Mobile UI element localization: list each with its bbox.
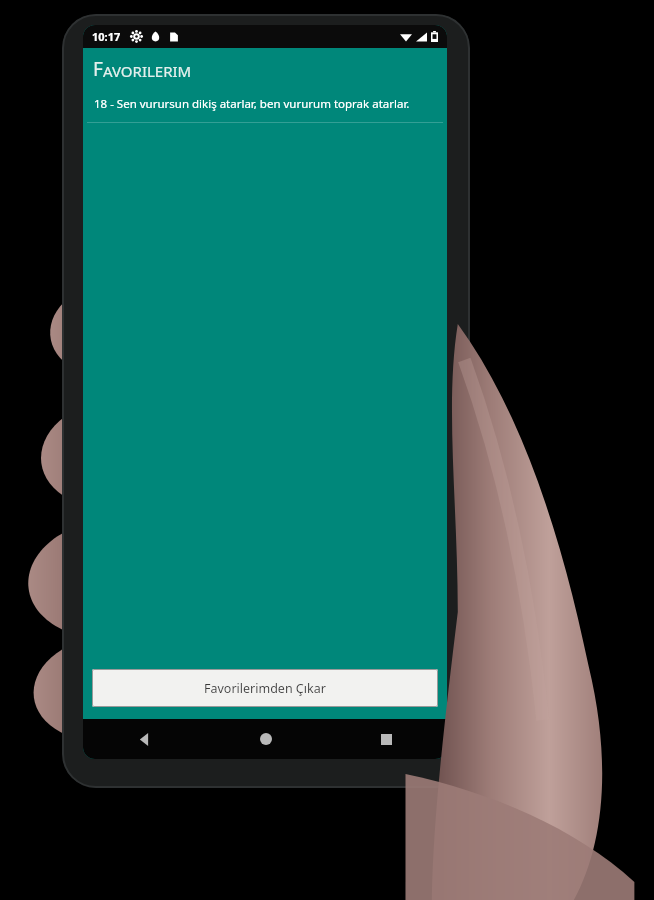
staticText: F	[93, 56, 103, 82]
staticText: Favorilerimden Çıkar	[204, 680, 326, 697]
button[interactable]: Recent apps	[326, 719, 447, 759]
staticText: 10:17	[92, 29, 121, 44]
button[interactable]: Back	[83, 719, 205, 759]
button[interactable]: 18 - Sen vurursun dikiş atarlar, ben vur…	[83, 90, 447, 122]
button[interactable]: Home	[205, 719, 326, 759]
button[interactable]: Favorilerimden Çıkar	[92, 669, 438, 707]
staticText: AVORILERIM	[103, 61, 192, 81]
staticText: 18 - Sen vurursun dikiş atarlar, ben vur…	[94, 96, 410, 112]
